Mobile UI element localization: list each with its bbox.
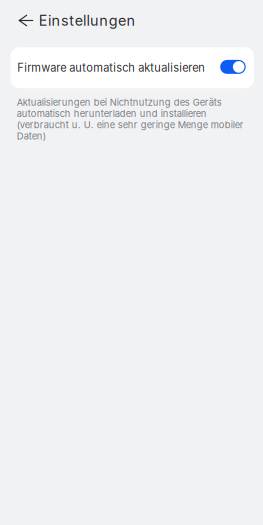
staticText: Firmware automatisch aktualisieren [17,61,205,74]
button[interactable]: Firmware automatisch aktualisieren [10,47,254,88]
staticText: Einstellungen [39,12,135,29]
button[interactable]: Back [0,6,39,34]
staticText: Aktualisierungen bei Nichtnutzung des Ge… [17,97,244,142]
